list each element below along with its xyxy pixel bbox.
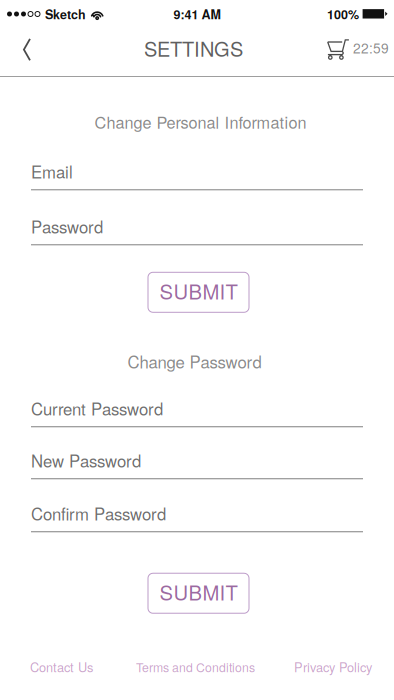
- staticText: 22:59: [353, 38, 389, 57]
- button[interactable]: Back: [0, 28, 46, 76]
- button[interactable]: Cart, 22 minutes 59 seconds remaining: [317, 28, 394, 76]
- button[interactable]: SUBMIT: [145, 573, 249, 613]
- staticText: 9:41 AM: [173, 5, 220, 23]
- staticText: Change Password: [127, 349, 261, 373]
- staticText: Confirm Password: [31, 501, 166, 525]
- staticText: Privacy Policy: [294, 658, 372, 676]
- staticText: 100%: [327, 5, 359, 23]
- staticText: Password: [31, 214, 103, 238]
- staticText: Email: [31, 159, 73, 183]
- button[interactable]: Contact Us: [30, 658, 93, 676]
- button[interactable]: Terms and Conditions: [136, 658, 255, 676]
- staticText: Change Personal Information: [94, 110, 306, 133]
- staticText: Terms and Conditions: [136, 658, 255, 676]
- staticText: SUBMIT: [159, 276, 237, 305]
- staticText: Contact Us: [30, 658, 93, 676]
- button[interactable]: Privacy Policy: [294, 658, 372, 676]
- staticText: Current Password: [31, 396, 163, 420]
- button[interactable]: SUBMIT: [145, 272, 249, 312]
- staticText: Sketch: [45, 5, 86, 23]
- staticText: SUBMIT: [159, 577, 237, 606]
- staticText: New Password: [31, 448, 141, 472]
- staticText: SETTINGS: [144, 34, 243, 62]
